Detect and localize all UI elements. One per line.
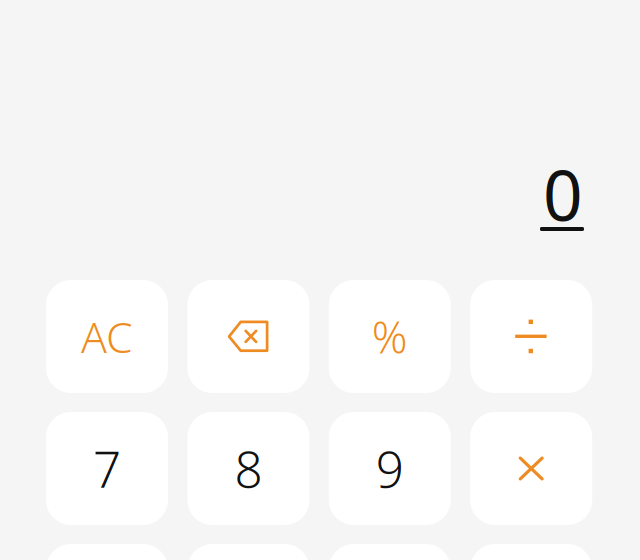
staticText: 0 — [543, 148, 583, 240]
button[interactable]: Multiply — [470, 412, 592, 525]
button[interactable]: 7 — [46, 412, 168, 525]
staticText: AC — [81, 308, 133, 365]
staticText: 7 — [93, 436, 121, 501]
button[interactable]: Divide — [470, 280, 592, 393]
button[interactable]: 9 — [329, 412, 451, 525]
staticText: 9 — [376, 436, 404, 501]
button[interactable]: Subtract — [470, 544, 592, 560]
button[interactable]: Delete — [187, 280, 309, 393]
staticText: % — [372, 307, 408, 366]
button[interactable]: AC — [46, 280, 168, 393]
button[interactable]: 5 — [187, 544, 309, 560]
button[interactable]: 6 — [329, 544, 451, 560]
button[interactable]: 4 — [46, 544, 168, 560]
button[interactable]: 8 — [187, 412, 309, 525]
button[interactable]: % — [329, 280, 451, 393]
staticText: 8 — [234, 436, 262, 501]
